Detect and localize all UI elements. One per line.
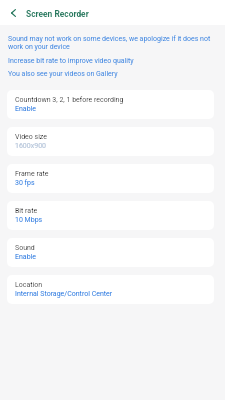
staticText: Bit rate <box>15 207 38 215</box>
button[interactable]: Sound <box>7 238 214 267</box>
button[interactable]: Location <box>7 275 214 304</box>
staticText: 30 fps <box>15 179 35 187</box>
staticText: Countdown 3, 2, 1 before recording <box>15 96 124 104</box>
staticText: 1600x900 <box>15 142 47 150</box>
staticText: 10 Mbps <box>15 216 43 224</box>
button[interactable]: Bit rate <box>7 201 214 230</box>
staticText: Frame rate <box>15 170 49 178</box>
staticText: Increase bit rate to improve video quali… <box>8 57 134 65</box>
staticText: Location <box>15 281 43 289</box>
button[interactable]: Back <box>3 3 23 23</box>
button[interactable]: Frame rate <box>7 164 214 193</box>
staticText: Video size <box>15 133 47 141</box>
button[interactable]: Countdown 3, 2, 1 before recording <box>7 90 214 119</box>
button[interactable]: Video size <box>7 127 214 156</box>
staticText: Enable <box>15 253 36 261</box>
staticText: Internal Storage/Control Center <box>15 290 113 298</box>
staticText: Sound <box>15 244 35 252</box>
staticText: Sound may not work on some devices, we a… <box>8 35 217 51</box>
staticText: You also see your videos on Gallery <box>8 70 118 78</box>
staticText: Enable <box>15 105 36 113</box>
staticText: Screen Recorder <box>26 9 89 19</box>
